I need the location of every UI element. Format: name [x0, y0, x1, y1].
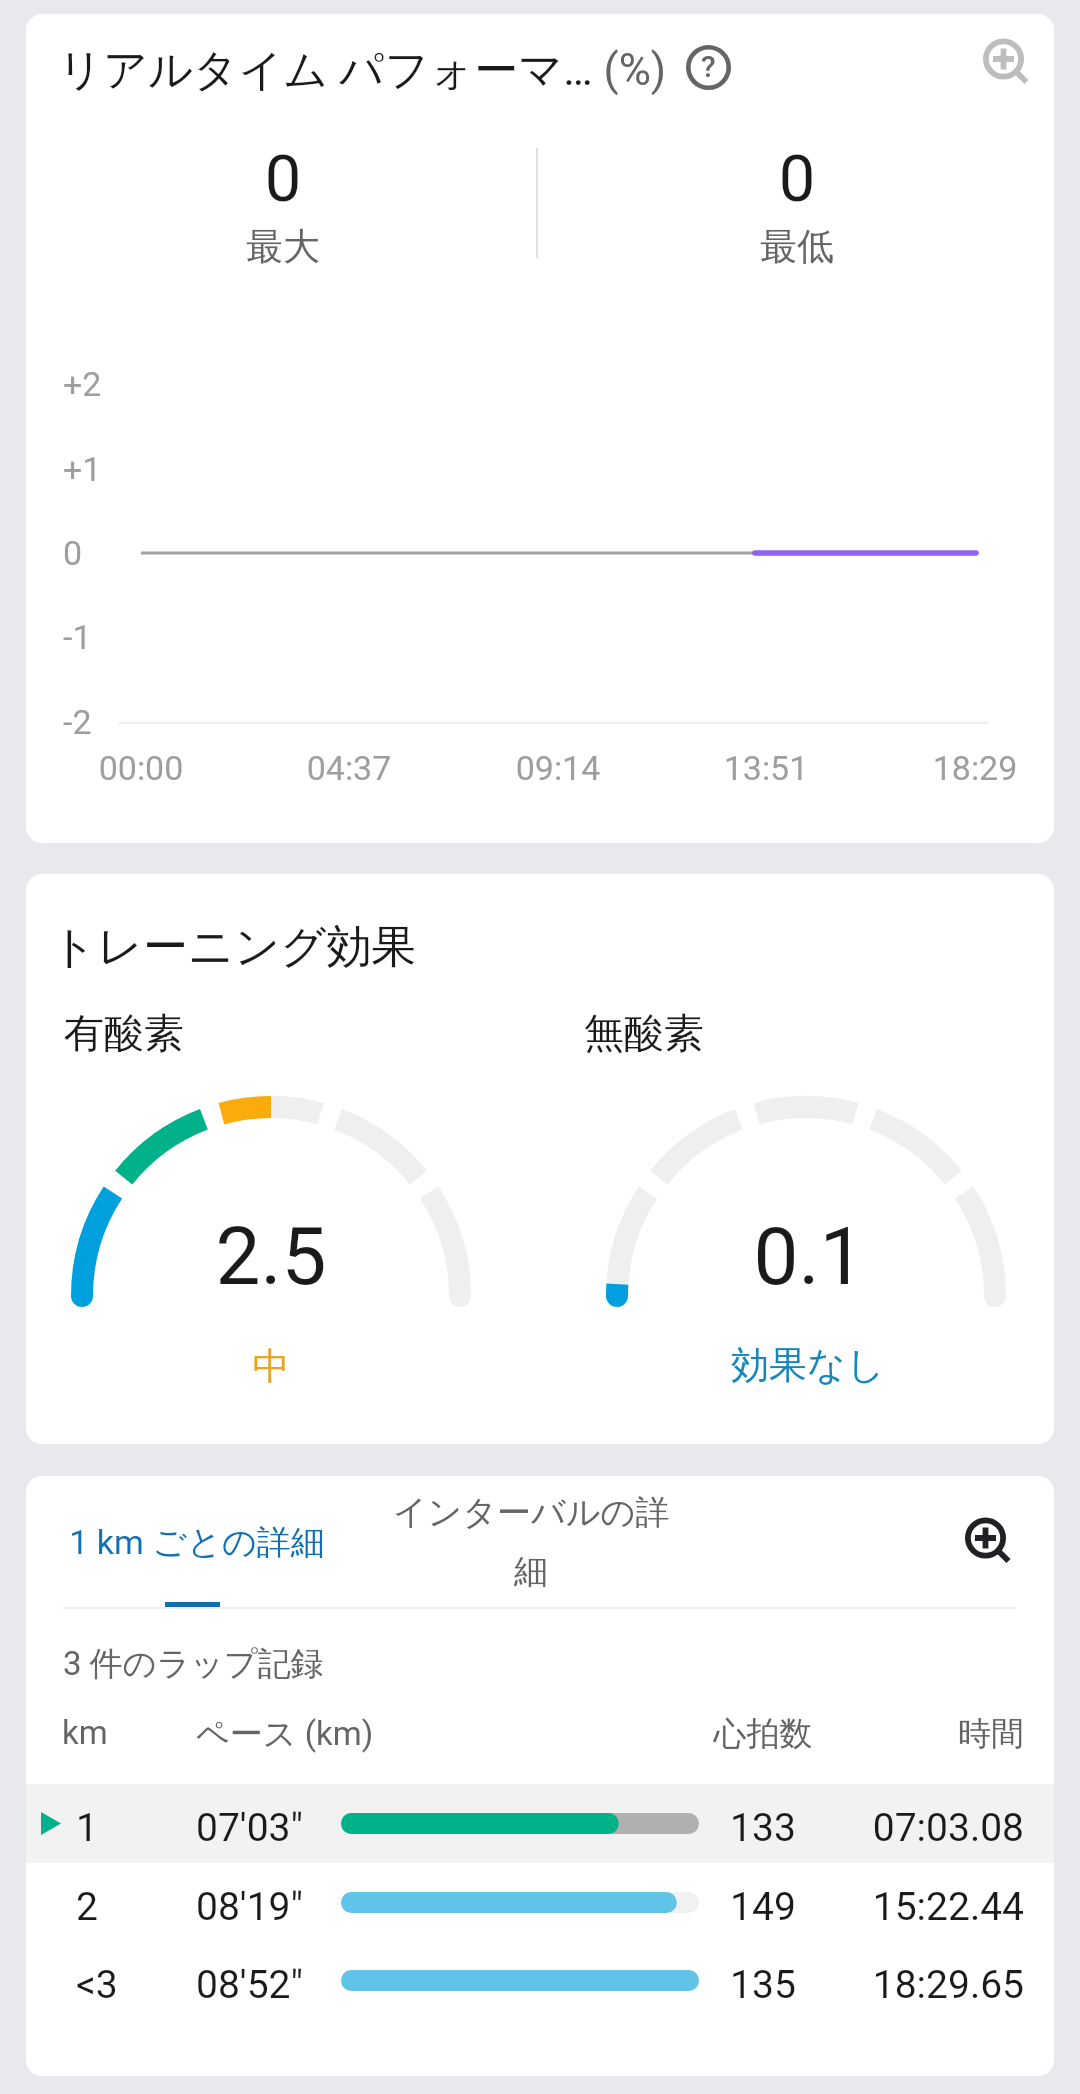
staticText: 09:14 [478, 748, 638, 788]
button[interactable]: 2 [26, 1867, 1054, 1946]
staticText: ペース (km) [196, 1713, 374, 1755]
staticText: インターバルの詳 細 [386, 1491, 676, 1593]
staticText: 3 件のラップ記録 [63, 1643, 324, 1685]
staticText: 1 km ごとの詳細 [69, 1521, 325, 1564]
staticText: -1 [63, 617, 92, 657]
staticText: km [62, 1713, 108, 1752]
staticText: 0 [747, 141, 847, 217]
button[interactable]: Zoom in [983, 38, 1028, 83]
button[interactable]: 1 [26, 1788, 1054, 1867]
staticText: 04:37 [269, 748, 429, 788]
staticText: 13:51 [686, 748, 846, 788]
button[interactable]: km [26, 1696, 1054, 1775]
staticText: 有酸素 [64, 1008, 184, 1058]
staticText: 0 [233, 141, 333, 217]
button[interactable]: Help [686, 45, 731, 90]
staticText: 07:03.08 [724, 1805, 1024, 1851]
staticText: 0.1 [709, 1210, 909, 1304]
staticText: 時間 [724, 1713, 1024, 1755]
staticText: リアルタイム パフォーマ… (%) [58, 43, 667, 98]
staticText: 心拍数 [663, 1713, 863, 1755]
button[interactable]: 1 km ごとの詳細 [52, 1482, 342, 1602]
staticText: 0 [63, 533, 83, 573]
staticText: 効果なし [708, 1341, 908, 1389]
staticText: 中 [191, 1343, 351, 1390]
staticText: 1 [76, 1805, 98, 1851]
staticText: トレーニング効果 [51, 919, 417, 976]
staticText: 最低 [737, 223, 857, 270]
staticText: +1 [63, 449, 102, 489]
button[interactable]: Zoom in [965, 1517, 1010, 1562]
staticText: +2 [63, 364, 102, 404]
staticText: 15:22.44 [724, 1884, 1024, 1930]
staticText: 135 [663, 1962, 863, 2008]
staticText: 08'19" [196, 1884, 303, 1930]
staticText: 2 [76, 1884, 98, 1930]
staticText: 00:00 [61, 748, 221, 788]
button[interactable]: インターバルの詳 細 [386, 1482, 676, 1602]
staticText: 無酸素 [584, 1008, 704, 1058]
staticText: <3 [76, 1962, 118, 2008]
staticText: -2 [63, 702, 92, 742]
staticText: 18:29.65 [724, 1962, 1024, 2008]
staticText: ? [701, 49, 716, 84]
button[interactable]: <3 [26, 1945, 1054, 2024]
staticText: 最大 [223, 223, 343, 270]
staticText: 149 [663, 1884, 863, 1930]
staticText: 08'52" [196, 1962, 303, 2008]
staticText: 18:29 [895, 748, 1054, 788]
staticText: 133 [663, 1805, 863, 1851]
staticText: 2.5 [171, 1210, 371, 1304]
staticText: 07'03" [196, 1805, 303, 1851]
